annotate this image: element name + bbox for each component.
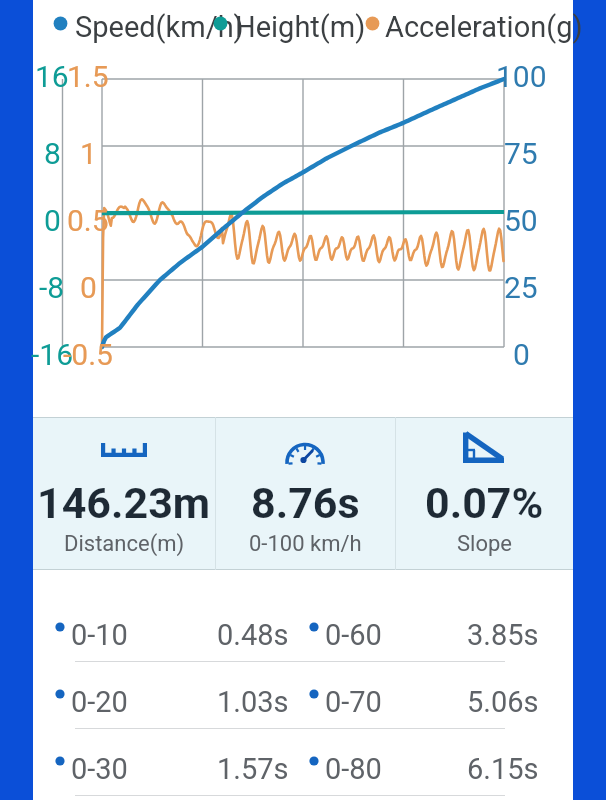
staticText: 50 bbox=[504, 203, 538, 238]
staticText: 0.07% bbox=[425, 478, 544, 528]
other: Slope bbox=[463, 432, 504, 463]
staticText: Height(m) bbox=[235, 10, 366, 44]
staticText: 3.85s bbox=[467, 618, 539, 652]
staticText: Distance(m) bbox=[64, 531, 185, 557]
button[interactable] bbox=[301, 672, 551, 732]
staticText: 0-30 bbox=[71, 752, 128, 786]
staticText: 25 bbox=[504, 270, 538, 305]
staticText: 8.76s bbox=[251, 478, 360, 528]
staticText: 100 bbox=[496, 59, 547, 94]
staticText: 1.5 bbox=[67, 59, 109, 94]
staticText: 0-10 bbox=[71, 618, 128, 652]
staticText: 0 bbox=[80, 270, 97, 305]
staticText: 0 bbox=[44, 203, 61, 238]
staticText: 16 bbox=[35, 59, 69, 94]
staticText: 0.48s bbox=[217, 618, 289, 652]
staticText: 5.06s bbox=[467, 685, 539, 719]
button[interactable] bbox=[47, 605, 297, 665]
other: Distance bbox=[101, 442, 147, 457]
staticText: 6.15s bbox=[467, 752, 539, 786]
button[interactable] bbox=[216, 417, 395, 570]
staticText: 1.03s bbox=[217, 685, 289, 719]
button[interactable] bbox=[301, 605, 551, 665]
button[interactable] bbox=[33, 417, 215, 570]
staticText: 0.5 bbox=[67, 203, 109, 238]
staticText: Slope bbox=[457, 531, 512, 557]
staticText: 0-60 bbox=[325, 618, 382, 652]
staticText: -8 bbox=[39, 270, 65, 305]
staticText: 0-80 bbox=[325, 752, 382, 786]
staticText: 146.23m bbox=[37, 478, 211, 528]
staticText: 8 bbox=[44, 136, 61, 171]
staticText: -0.5 bbox=[63, 337, 113, 372]
button[interactable] bbox=[47, 739, 297, 799]
staticText: 1.57s bbox=[217, 752, 289, 786]
staticText: 1 bbox=[80, 136, 97, 171]
staticText: -16 bbox=[31, 337, 74, 372]
staticText: 0 bbox=[513, 337, 530, 372]
staticText: Acceleration(g) bbox=[385, 10, 583, 44]
button[interactable] bbox=[47, 672, 297, 732]
staticText: 0-20 bbox=[71, 685, 128, 719]
staticText: 0-100 km/h bbox=[249, 531, 362, 557]
staticText: 75 bbox=[504, 136, 538, 171]
staticText: 0-70 bbox=[325, 685, 382, 719]
button[interactable] bbox=[301, 739, 551, 799]
button[interactable] bbox=[396, 417, 573, 570]
other: 0-100 km/h bbox=[285, 438, 325, 465]
staticText: Speed(km/h) bbox=[75, 10, 244, 44]
